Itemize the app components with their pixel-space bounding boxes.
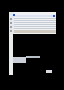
button[interactable] [9,26,14,28]
button[interactable] [9,30,14,32]
button[interactable] [9,18,14,20]
button[interactable] [9,22,14,24]
button[interactable] [14,12,56,15]
